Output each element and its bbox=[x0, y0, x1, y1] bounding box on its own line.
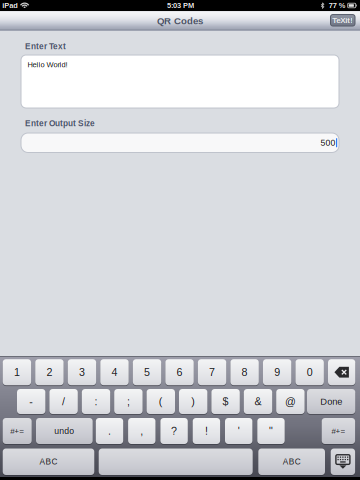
staticText: $ bbox=[223, 395, 229, 407]
button[interactable]: ABC bbox=[3, 448, 94, 475]
button[interactable]: ? bbox=[160, 418, 188, 444]
staticText: 5 bbox=[144, 366, 150, 378]
staticText: 6 bbox=[176, 366, 182, 378]
button[interactable]: 1 bbox=[3, 359, 31, 385]
staticText: iPad bbox=[2, 1, 18, 10]
button[interactable]: 2 bbox=[35, 359, 64, 385]
button[interactable]: ) bbox=[179, 389, 207, 414]
button[interactable]: ' bbox=[225, 418, 252, 444]
button[interactable]: , bbox=[128, 418, 155, 444]
staticText: TeXit! bbox=[332, 16, 353, 25]
staticText: 5:03 PM bbox=[167, 1, 194, 10]
staticText: ; bbox=[127, 395, 130, 407]
staticText: Enter Text bbox=[25, 42, 66, 51]
staticText: ? bbox=[171, 425, 177, 437]
button[interactable]: @ bbox=[276, 389, 305, 414]
button[interactable]: 6 bbox=[165, 359, 194, 385]
staticText: 3 bbox=[79, 366, 85, 378]
button[interactable]: ABC bbox=[258, 448, 325, 475]
staticText: . bbox=[108, 425, 111, 437]
staticText: 2 bbox=[46, 366, 52, 378]
button[interactable]: ; bbox=[114, 389, 143, 414]
staticText: ! bbox=[205, 425, 208, 437]
staticText: @ bbox=[285, 395, 296, 407]
button[interactable]: TeXit! bbox=[330, 15, 355, 27]
staticText: ABC bbox=[39, 457, 57, 466]
button[interactable]: undo bbox=[36, 418, 93, 444]
button[interactable]: Delete bbox=[328, 359, 355, 385]
staticText: 0 bbox=[307, 366, 313, 378]
button[interactable]: . bbox=[96, 418, 123, 444]
button[interactable]: 4 bbox=[100, 359, 129, 385]
staticText: 8 bbox=[242, 366, 248, 378]
button[interactable]: Done bbox=[307, 389, 355, 414]
button[interactable]: $ bbox=[211, 389, 240, 414]
staticText: , bbox=[140, 425, 143, 437]
staticText: : bbox=[94, 395, 97, 407]
staticText: Enter Output Size bbox=[25, 119, 95, 128]
staticText: ' bbox=[238, 425, 240, 437]
staticText: QR Codes bbox=[157, 16, 203, 26]
button[interactable]: 5 bbox=[133, 359, 161, 385]
staticText: / bbox=[62, 395, 65, 407]
staticText: " bbox=[269, 425, 273, 437]
staticText: undo bbox=[54, 426, 74, 436]
button[interactable]: #+= bbox=[3, 418, 32, 444]
staticText: ( bbox=[159, 395, 163, 407]
button[interactable]: #+= bbox=[322, 418, 355, 444]
button[interactable]: & bbox=[244, 389, 272, 414]
button[interactable]: : bbox=[82, 389, 110, 414]
staticText: 9 bbox=[274, 366, 280, 378]
staticText: 500 bbox=[320, 138, 335, 148]
staticText: Hello World! bbox=[27, 60, 67, 69]
button[interactable]: 9 bbox=[263, 359, 291, 385]
staticText: ) bbox=[191, 395, 195, 407]
staticText: - bbox=[29, 395, 33, 407]
staticText: 1 bbox=[14, 366, 20, 378]
button[interactable]: " bbox=[257, 418, 285, 444]
staticText: #+= bbox=[331, 426, 345, 435]
staticText: #+= bbox=[10, 426, 24, 435]
staticText: 7 bbox=[209, 366, 215, 378]
button[interactable]: ( bbox=[147, 389, 175, 414]
staticText: 4 bbox=[111, 366, 117, 378]
button[interactable]: 3 bbox=[68, 359, 96, 385]
staticText: Done bbox=[320, 396, 342, 407]
button[interactable]: / bbox=[49, 389, 78, 414]
button[interactable]: ! bbox=[193, 418, 220, 444]
staticText: & bbox=[254, 395, 261, 407]
button[interactable]: - bbox=[17, 389, 45, 414]
button[interactable]: Hide keyboard bbox=[331, 448, 355, 475]
button[interactable]: 0 bbox=[295, 359, 324, 385]
button[interactable]: Space bbox=[99, 448, 253, 475]
staticText: ABC bbox=[283, 457, 301, 466]
staticText: 77 % bbox=[329, 1, 346, 10]
button[interactable]: 7 bbox=[198, 359, 226, 385]
button[interactable]: 8 bbox=[230, 359, 259, 385]
